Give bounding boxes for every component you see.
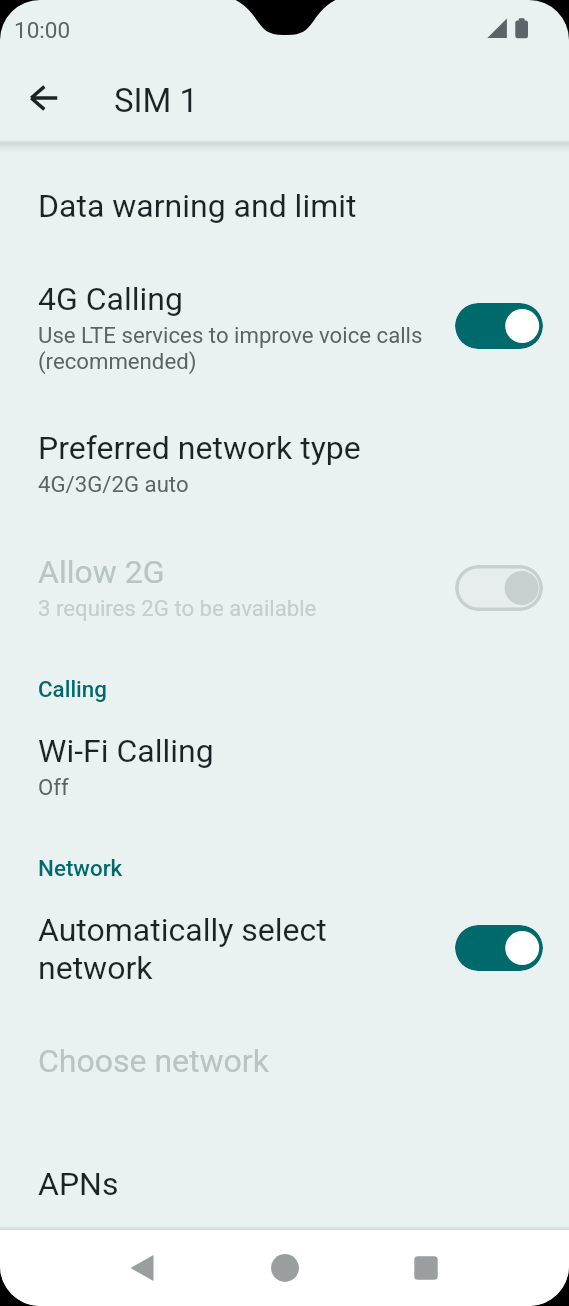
button[interactable]: On — [455, 303, 543, 349]
button[interactable]: Choose network — [0, 1042, 569, 1080]
staticText: 4G Calling — [38, 280, 183, 318]
staticText: Preferred network type — [38, 429, 361, 467]
button[interactable]: Off — [455, 565, 543, 611]
button[interactable]: Recent apps — [402, 1244, 450, 1292]
staticText: 3 requires 2G to be available — [38, 595, 317, 621]
button[interactable]: Wi-Fi Calling — [0, 732, 569, 800]
staticText: Off — [38, 774, 69, 800]
staticText: Automatically select network — [38, 911, 443, 987]
staticText: 10:00 — [14, 17, 71, 43]
staticText: APNs — [38, 1165, 119, 1203]
staticText: Choose network — [38, 1042, 269, 1080]
staticText: 4G/3G/2G auto — [38, 471, 189, 497]
button[interactable]: Home — [261, 1244, 309, 1292]
staticText: Wi-Fi Calling — [38, 732, 214, 770]
staticText: Allow 2G — [38, 553, 165, 591]
button[interactable]: Allow 2G — [0, 553, 569, 621]
button[interactable]: 4G Calling — [0, 280, 569, 374]
staticText: SIM 1 — [114, 81, 199, 120]
button[interactable]: APNs — [0, 1165, 569, 1203]
staticText: Network — [38, 855, 123, 881]
button[interactable]: Navigate up — [20, 74, 68, 122]
button[interactable]: Automatically select network — [0, 911, 569, 987]
button[interactable]: Preferred network type — [0, 429, 569, 497]
staticText: Calling — [38, 676, 107, 702]
staticText: Use LTE services to improve voice calls … — [38, 322, 443, 374]
button[interactable]: Back — [118, 1244, 166, 1292]
staticText: Data warning and limit — [38, 187, 357, 225]
button[interactable]: Data warning and limit — [0, 187, 569, 225]
button[interactable]: On — [455, 925, 543, 971]
